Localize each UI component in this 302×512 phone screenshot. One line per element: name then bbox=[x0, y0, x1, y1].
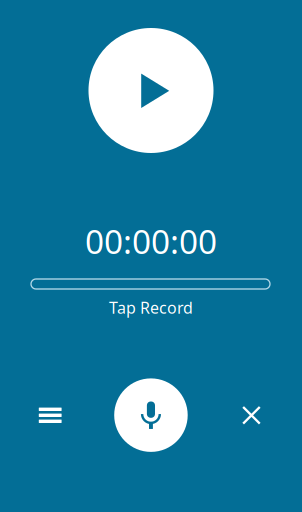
button[interactable]: Play bbox=[88, 28, 213, 153]
button[interactable]: Menu bbox=[22, 387, 78, 443]
staticText: 00:00:00 bbox=[85, 219, 217, 263]
button[interactable]: Close bbox=[223, 387, 279, 443]
button[interactable]: Record bbox=[114, 378, 188, 452]
staticText: Tap Record bbox=[109, 297, 193, 318]
